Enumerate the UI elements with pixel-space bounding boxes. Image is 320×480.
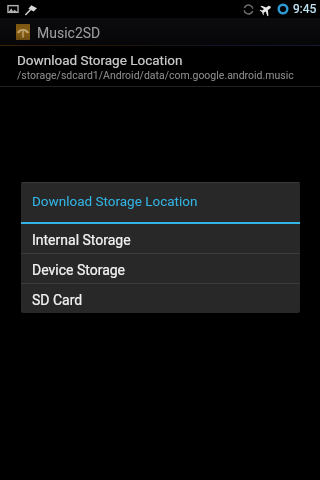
button[interactable]: Device Storage: [21, 254, 300, 283]
button[interactable]: Download Storage Location: [0, 46, 320, 86]
staticText: Download Storage Location: [17, 52, 183, 68]
staticText: Device Storage: [32, 262, 126, 278]
button[interactable]: SD Card: [21, 284, 300, 313]
staticText: Download Storage Location: [32, 193, 198, 209]
staticText: Internal Storage: [32, 232, 131, 248]
staticText: SD Card: [32, 292, 83, 308]
staticText: 9:45: [293, 2, 317, 16]
button[interactable]: Internal Storage: [21, 224, 300, 253]
staticText: /storage/sdcard1/Android/data/com.google…: [17, 69, 294, 81]
staticText: Music2SD: [37, 25, 101, 41]
